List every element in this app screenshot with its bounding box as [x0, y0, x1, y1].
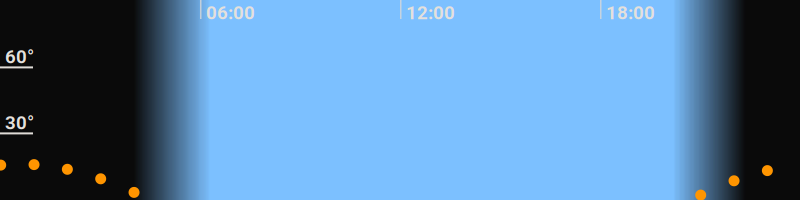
staticText: 06:00: [206, 2, 255, 24]
staticText: 12:00: [406, 2, 455, 24]
staticText: 60°: [5, 46, 34, 68]
staticText: 18:00: [606, 2, 655, 24]
staticText: 30°: [5, 112, 34, 134]
